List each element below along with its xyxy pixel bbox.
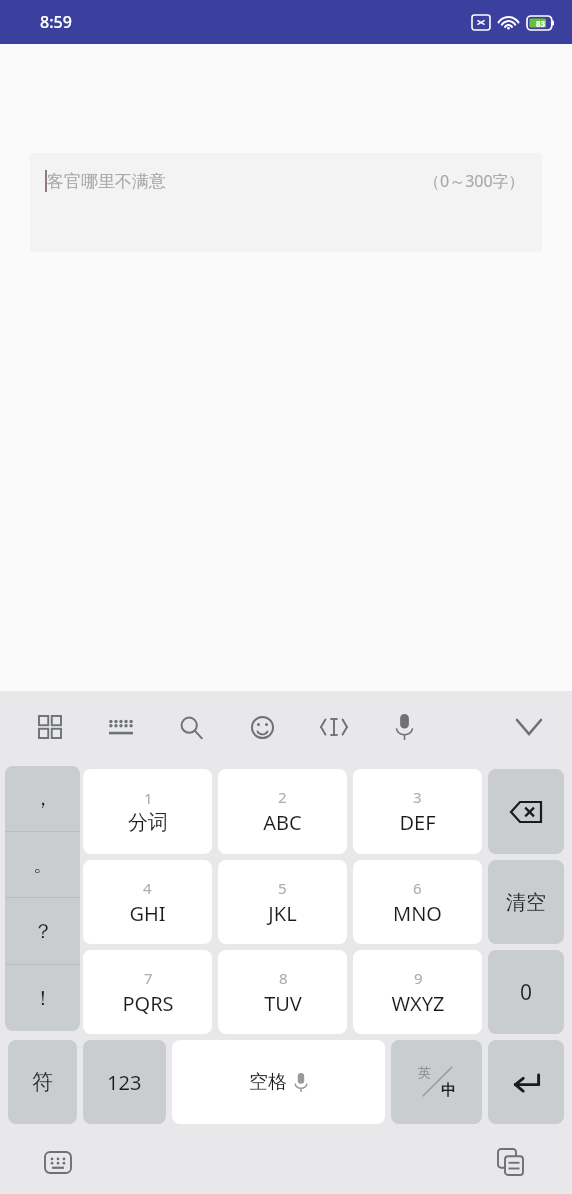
staticText: 5 — [278, 878, 287, 898]
button[interactable]: Hide keyboard — [506, 704, 552, 750]
button[interactable]: 1 — [83, 769, 212, 854]
button[interactable]: Emoji — [227, 699, 298, 755]
button[interactable]: Clipboard — [486, 1138, 534, 1186]
staticText: TUV — [264, 990, 302, 1017]
staticText: 0 — [520, 978, 533, 1007]
staticText: 3 — [413, 787, 422, 807]
button[interactable]: 9 — [353, 950, 482, 1034]
button[interactable]: 7 — [83, 950, 212, 1034]
button[interactable]: 。 — [5, 832, 80, 897]
staticText: ， — [33, 786, 53, 811]
staticText: 4 — [143, 878, 152, 898]
staticText: 。 — [33, 852, 53, 877]
button[interactable]: Search — [156, 699, 227, 755]
button[interactable]: 清空 — [488, 860, 564, 944]
staticText: 2 — [278, 787, 287, 807]
staticText: MNO — [393, 900, 442, 927]
staticText: 分词 — [128, 810, 168, 835]
staticText: ！ — [33, 986, 53, 1011]
staticText: WXYZ — [391, 990, 445, 1017]
button[interactable]: Voice input — [369, 699, 440, 755]
button[interactable]: 4 — [83, 860, 212, 944]
button[interactable]: ！ — [5, 965, 80, 1031]
button[interactable]: ？ — [5, 898, 80, 964]
staticText: 空格 — [249, 1070, 287, 1094]
button[interactable]: Keyboard — [85, 699, 156, 755]
button[interactable]: ， — [5, 766, 80, 831]
staticText: 83 — [536, 18, 546, 29]
button[interactable]: 0 — [488, 950, 564, 1034]
staticText: DEF — [399, 809, 436, 836]
button[interactable]: 客官哪里不满意 — [30, 153, 542, 252]
staticText: JKL — [268, 900, 297, 927]
staticText: ？ — [33, 919, 53, 944]
staticText: 6 — [413, 878, 422, 898]
staticText: ABC — [263, 809, 302, 836]
staticText: 英 — [418, 1064, 431, 1080]
staticText: 123 — [107, 1069, 142, 1096]
staticText: 1 — [144, 788, 153, 808]
staticText: 中 — [441, 1081, 456, 1100]
staticText: PQRS — [122, 990, 174, 1017]
button[interactable]: Edit cursor — [298, 699, 369, 755]
staticText: 7 — [144, 968, 153, 988]
button[interactable]: Apps — [14, 699, 85, 755]
staticText: 9 — [414, 968, 423, 988]
staticText: （0～300字） — [424, 170, 525, 192]
staticText: 清空 — [506, 890, 546, 915]
staticText: 8 — [279, 968, 288, 988]
staticText: GHI — [129, 900, 166, 927]
staticText: 符 — [32, 1069, 53, 1095]
button[interactable]: 2 — [218, 769, 347, 854]
button[interactable]: 5 — [218, 860, 347, 944]
button[interactable]: 空格 — [172, 1040, 385, 1124]
button[interactable]: 123 — [83, 1040, 166, 1124]
button[interactable]: 符 — [8, 1040, 77, 1124]
button[interactable]: Switch keyboard — [34, 1138, 82, 1186]
button[interactable]: 英 — [391, 1040, 482, 1124]
button[interactable]: Enter — [488, 1040, 564, 1124]
button[interactable]: 8 — [218, 950, 347, 1034]
button[interactable]: 6 — [353, 860, 482, 944]
staticText: 8:59 — [40, 11, 72, 33]
button[interactable]: 3 — [353, 769, 482, 854]
button[interactable]: Backspace — [488, 769, 564, 854]
staticText: 客官哪里不满意 — [47, 171, 166, 192]
